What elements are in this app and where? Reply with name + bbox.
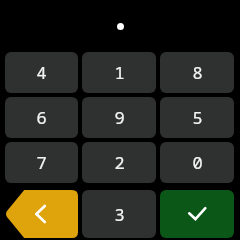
button[interactable]: 0 <box>160 142 234 183</box>
button[interactable]: 7 <box>5 142 78 183</box>
button[interactable]: 2 <box>82 142 156 183</box>
button[interactable]: 9 <box>82 97 156 138</box>
staticText: 9 <box>114 106 125 129</box>
staticText: 6 <box>36 106 47 129</box>
button[interactable]: Confirm <box>160 190 234 238</box>
staticText: 7 <box>36 151 47 174</box>
staticText: 3 <box>114 203 125 226</box>
staticText: 8 <box>192 61 203 84</box>
button[interactable]: 4 <box>5 52 78 93</box>
staticText: 2 <box>114 151 125 174</box>
staticText: 0 <box>192 151 203 174</box>
button[interactable]: 5 <box>160 97 234 138</box>
button[interactable]: 1 <box>82 52 156 93</box>
staticText: 4 <box>36 61 47 84</box>
button[interactable]: 3 <box>82 190 156 238</box>
button[interactable]: 8 <box>160 52 234 93</box>
button[interactable]: Delete <box>5 190 78 238</box>
button[interactable]: 6 <box>5 97 78 138</box>
staticText: 1 <box>114 61 125 84</box>
staticText: 5 <box>192 106 203 129</box>
